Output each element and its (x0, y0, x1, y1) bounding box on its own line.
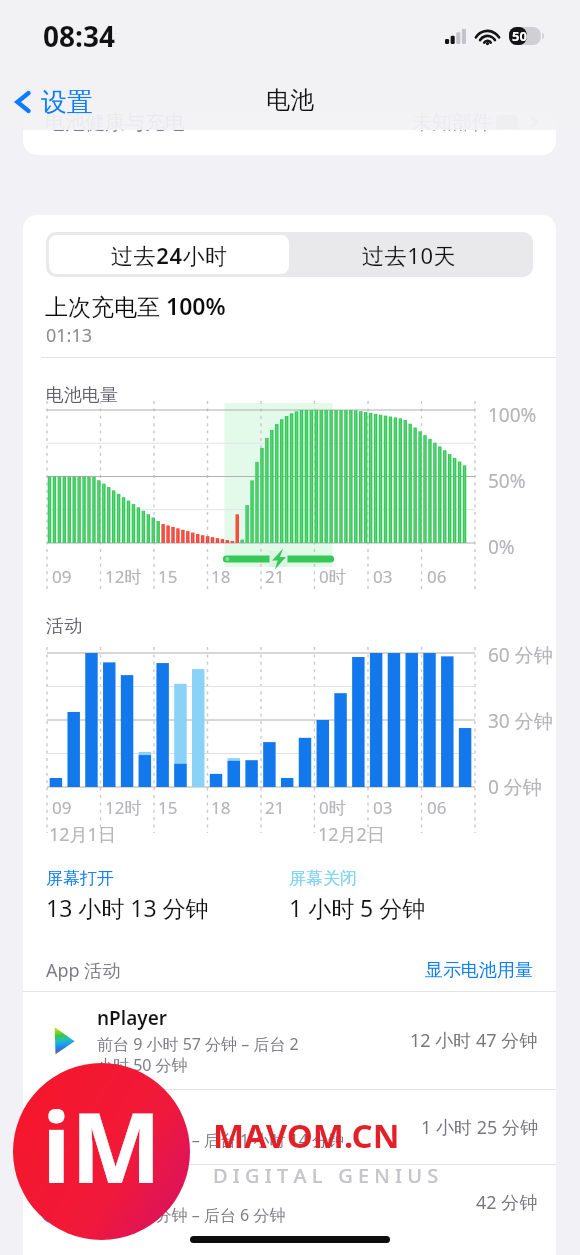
staticText: nPlayer (97, 1005, 168, 1031)
staticText: 前台 12 分钟 – 后台 1 小时 14 分钟 (97, 1129, 345, 1151)
staticText: 03 (373, 565, 393, 588)
button[interactable]: 微信 (23, 1090, 556, 1164)
staticText: 屏幕关闭 (289, 868, 357, 889)
staticText: 09 (52, 796, 72, 819)
button[interactable]: 过去10天 (289, 235, 530, 274)
staticText: 0% (488, 534, 515, 560)
staticText: 01:13 (46, 323, 93, 348)
staticText: 前台 36 分钟 – 后台 6 分钟 (97, 1204, 286, 1226)
staticText: 电池电量 (46, 384, 118, 407)
staticText: 12 小时 47 分钟 (410, 1028, 538, 1053)
button[interactable]: 贴吧 (23, 1165, 556, 1239)
staticText: 1 小时 5 分钟 (289, 892, 426, 923)
staticText: 12时 (105, 565, 142, 588)
button[interactable]: 过去24小时 (49, 235, 289, 274)
staticText: 1 小时 25 分钟 (421, 1115, 538, 1140)
staticText: 21 (265, 565, 285, 588)
staticText: 21 (265, 796, 285, 819)
staticText: 前台 9 小时 57 分钟 – 后台 2 小时 50 分钟 (97, 1033, 299, 1076)
staticText: 06 (427, 796, 447, 819)
staticText: 未知部件 (412, 112, 492, 135)
staticText: 50 (512, 27, 527, 44)
staticText: 设置 (41, 86, 93, 119)
staticText: 15 (158, 565, 178, 588)
staticText: 12月1日 (49, 822, 116, 847)
staticText: 0 分钟 (488, 774, 542, 800)
staticText: 15 (158, 796, 178, 819)
staticText: 03 (373, 796, 393, 819)
staticText: 13 小时 13 分钟 (46, 892, 209, 923)
staticText: 12月2日 (318, 822, 385, 847)
staticText: App 活动 (46, 958, 121, 983)
button[interactable]: Back (10, 82, 96, 121)
staticText: 06 (427, 565, 447, 588)
staticText: 0时 (319, 796, 346, 819)
staticText: 09 (52, 565, 72, 588)
staticText: 30 分钟 (488, 708, 553, 734)
button[interactable]: 显示电池用量 (425, 959, 533, 982)
staticText: D I G I T A L G E N I U S (213, 1162, 439, 1189)
staticText: 18 (211, 796, 231, 819)
staticText: MAVOM.CN (213, 1113, 400, 1158)
staticText: 50% (488, 468, 526, 494)
staticText: 活动 (46, 615, 82, 638)
staticText: 微信 (97, 1103, 135, 1127)
staticText: 0时 (319, 565, 346, 588)
staticText: 12时 (105, 796, 142, 819)
staticText: 电池 (266, 85, 314, 115)
staticText: 屏幕打开 (46, 868, 114, 889)
staticText: 08:34 (43, 17, 115, 55)
staticText: 100% (488, 402, 537, 428)
other: Back (13, 87, 33, 117)
button[interactable]: nPlayer (23, 992, 556, 1089)
staticText: 18 (211, 565, 231, 588)
staticText: 过去24小时 (111, 240, 228, 270)
staticText: 贴吧 (97, 1178, 135, 1202)
staticText: 上次充电至 100% (45, 290, 226, 321)
staticText: iM (42, 1080, 162, 1211)
staticText: 60 分钟 (488, 642, 553, 668)
staticText: 过去10天 (362, 240, 457, 270)
staticText: 42 分钟 (476, 1190, 538, 1215)
staticText: 显示电池用量 (425, 959, 533, 982)
staticText: 电池健康与充电 (45, 112, 185, 135)
